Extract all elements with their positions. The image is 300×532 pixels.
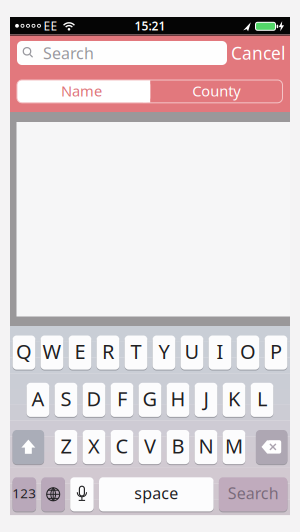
button[interactable]: V (139, 430, 161, 464)
staticText: 15:21 (134, 18, 165, 34)
button[interactable] (70, 477, 94, 511)
button[interactable]: J (195, 383, 217, 417)
button[interactable]: F (111, 383, 133, 417)
button[interactable]: T (125, 335, 147, 370)
staticText: Cancel (231, 41, 285, 64)
button[interactable]: H (167, 383, 189, 417)
button[interactable]: Q (13, 335, 35, 370)
button[interactable]: Cancel (231, 41, 285, 64)
button[interactable]: P (265, 335, 287, 370)
staticText: H (170, 385, 185, 412)
staticText: Search (43, 42, 94, 64)
staticText: E (74, 338, 85, 365)
button[interactable]: I (209, 335, 231, 370)
button[interactable]: N (195, 430, 217, 464)
staticText: M (225, 432, 243, 459)
button[interactable]: D (83, 383, 105, 417)
staticText: T (130, 338, 141, 365)
button[interactable]: L (251, 383, 273, 417)
staticText: EE (43, 18, 57, 34)
staticText: N (198, 432, 213, 459)
staticText: R (102, 338, 114, 365)
staticText: K (228, 385, 240, 412)
button[interactable]: K (223, 383, 245, 417)
staticText: County (192, 81, 240, 101)
button[interactable]: X (83, 430, 105, 464)
staticText: 123 (12, 484, 36, 502)
staticText: W (42, 338, 61, 365)
staticText: B (171, 432, 184, 459)
staticText: F (117, 385, 127, 412)
staticText: A (31, 385, 44, 412)
staticText: Name (61, 81, 102, 101)
button[interactable]: Y (153, 335, 175, 370)
staticText: X (88, 432, 100, 459)
staticText: space (134, 482, 178, 504)
button[interactable]: Search (17, 41, 227, 65)
button[interactable]: space (99, 477, 214, 511)
button[interactable]: C (111, 430, 133, 464)
staticText: S (60, 385, 71, 412)
button[interactable]: U (181, 335, 203, 370)
staticText: P (270, 338, 282, 365)
button[interactable]: Z (55, 430, 77, 464)
button[interactable]: 123 (13, 477, 36, 511)
staticText: Y (158, 338, 169, 365)
button[interactable] (41, 477, 65, 511)
staticText: C (115, 432, 128, 459)
button[interactable]: B (167, 430, 189, 464)
button[interactable]: A (27, 383, 49, 417)
staticText: L (257, 385, 267, 412)
button[interactable]: W (41, 335, 63, 370)
staticText: U (184, 338, 199, 365)
button[interactable] (13, 430, 44, 464)
button[interactable]: Search (219, 477, 287, 511)
button[interactable] (256, 430, 287, 464)
staticText: V (144, 432, 156, 459)
button[interactable]: M (223, 430, 245, 464)
staticText: J (203, 385, 208, 412)
button[interactable]: R (97, 335, 119, 370)
button[interactable]: S (55, 383, 77, 417)
button[interactable]: Name (17, 80, 150, 103)
staticText: Search (228, 482, 279, 504)
staticText: O (240, 338, 256, 365)
staticText: Q (16, 338, 32, 365)
button[interactable]: E (69, 335, 91, 370)
button[interactable]: County (150, 80, 282, 103)
staticText: G (142, 385, 157, 412)
staticText: Z (60, 432, 71, 459)
staticText: I (216, 338, 223, 365)
button[interactable]: G (139, 383, 161, 417)
staticText: D (86, 385, 101, 412)
button[interactable]: O (237, 335, 259, 370)
